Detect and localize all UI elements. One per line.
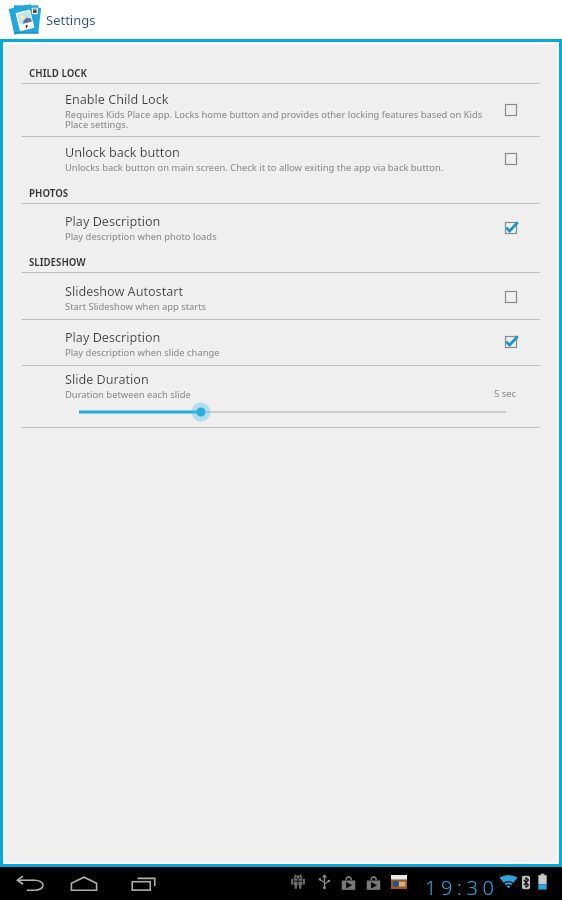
button[interactable]: Home bbox=[63, 867, 105, 900]
button[interactable]: Slideshow Autostart, unchecked bbox=[499, 285, 523, 309]
staticText: Settings bbox=[46, 11, 96, 29]
staticText: SLIDESHOW bbox=[29, 256, 86, 269]
staticText: Enable Child Lock bbox=[65, 91, 169, 108]
staticText: Requires Kids Place app. Locks home butt… bbox=[65, 108, 485, 131]
button[interactable]: Recent apps bbox=[124, 867, 163, 900]
button[interactable]: Enable Child Lock, unchecked bbox=[499, 98, 523, 122]
button[interactable]: Unlock back button bbox=[5, 144, 557, 180]
button[interactable]: Play Description, checked bbox=[499, 330, 523, 354]
button[interactable]: Settings bbox=[0, 0, 562, 39]
staticText: Slideshow Autostart bbox=[65, 283, 184, 300]
button[interactable]: Play Description bbox=[5, 329, 557, 365]
staticText: Start Slideshow when app starts bbox=[65, 300, 207, 313]
staticText: 5 sec bbox=[494, 387, 517, 400]
button[interactable]: Play Description, checked bbox=[499, 216, 523, 240]
button[interactable]: Unlock back button, unchecked bbox=[499, 147, 523, 171]
staticText: Play Description bbox=[65, 213, 161, 230]
staticText: Unlock back button bbox=[65, 144, 180, 161]
staticText: Slide Duration bbox=[65, 371, 149, 388]
button[interactable]: Back bbox=[9, 867, 50, 900]
button[interactable]: Play Description bbox=[5, 213, 557, 249]
staticText: Unlocks back button on main screen. Chec… bbox=[65, 161, 444, 174]
button[interactable]: Slide Duration bbox=[5, 371, 557, 423]
button[interactable]: Slideshow Autostart bbox=[5, 283, 557, 319]
staticText: Play Description bbox=[65, 329, 161, 346]
staticText: PHOTOS bbox=[29, 187, 69, 200]
staticText: Duration between each slide bbox=[65, 388, 191, 401]
button[interactable]: Enable Child Lock bbox=[5, 91, 557, 136]
staticText: CHILD LOCK bbox=[29, 67, 87, 80]
staticText: Play description when slide change bbox=[65, 346, 220, 359]
staticText: 19:30 bbox=[425, 874, 499, 900]
staticText: Play description when photo loads bbox=[65, 230, 217, 243]
